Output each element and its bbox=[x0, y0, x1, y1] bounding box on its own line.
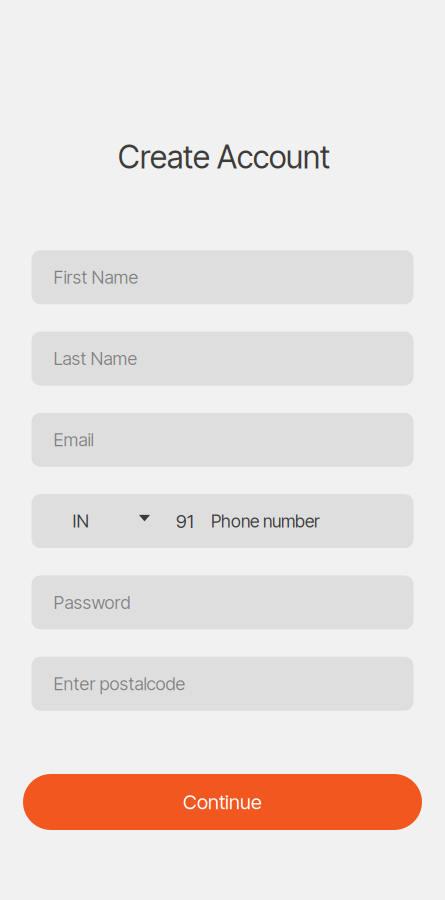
button[interactable]: Email bbox=[31, 413, 413, 467]
button[interactable]: 91 bbox=[163, 494, 413, 548]
button[interactable]: First Name bbox=[31, 250, 413, 304]
button[interactable]: Enter postalcode bbox=[31, 657, 413, 711]
staticText: 91 bbox=[176, 510, 194, 532]
staticText: Enter postalcode bbox=[53, 673, 185, 694]
staticText: Last Name bbox=[53, 348, 137, 369]
staticText: Password bbox=[53, 592, 130, 613]
staticText: Phone number bbox=[211, 511, 320, 532]
button[interactable]: Country code, India bbox=[31, 494, 163, 548]
staticText: First Name bbox=[53, 266, 138, 288]
button[interactable]: Password bbox=[31, 575, 413, 629]
staticText: IN bbox=[72, 510, 89, 532]
button[interactable]: Continue bbox=[23, 774, 422, 830]
staticText: Create Account bbox=[118, 138, 330, 176]
staticText: Continue bbox=[183, 790, 262, 814]
button[interactable]: Last Name bbox=[31, 331, 413, 385]
staticText: Email bbox=[53, 429, 93, 451]
